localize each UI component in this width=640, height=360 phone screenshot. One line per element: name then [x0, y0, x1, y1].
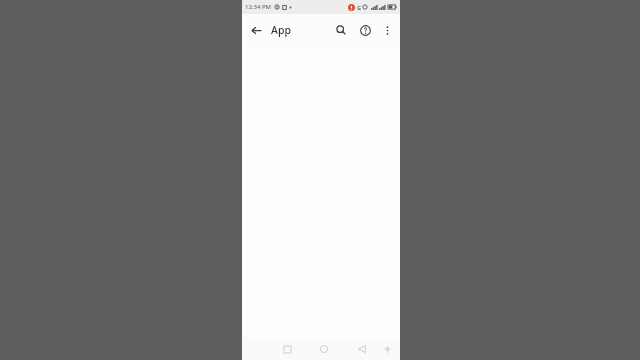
button[interactable]: Back — [353, 340, 371, 358]
staticText: G — [357, 4, 361, 11]
button[interactable]: Recent apps — [278, 340, 296, 358]
button[interactable]: Home — [315, 340, 333, 358]
button[interactable]: Help — [354, 19, 376, 41]
staticText: 12:34 PM — [245, 3, 272, 11]
staticText: App permissi... — [271, 23, 330, 37]
button[interactable]: Search — [330, 19, 352, 41]
button[interactable]: More options — [377, 20, 397, 40]
button[interactable]: Navigate up — [246, 20, 266, 40]
button[interactable]: Switch input method — [379, 341, 395, 357]
